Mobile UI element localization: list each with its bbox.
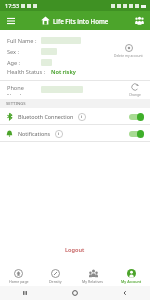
staticText: Delete my account [114, 53, 143, 57]
staticText: SETTINGS [6, 101, 26, 107]
staticText: Phone Number : [7, 84, 39, 95]
staticText: Density [49, 279, 62, 284]
button[interactable]: Change phone number [129, 83, 141, 96]
button[interactable]: Home page [0, 266, 37, 286]
staticText: i [81, 114, 83, 120]
button[interactable]: Menu [4, 14, 17, 27]
button[interactable]: Delete my account [114, 44, 143, 57]
staticText: Not risky [51, 68, 76, 76]
staticText: Health Status : [7, 68, 46, 76]
button[interactable]: Info about Bluetooth Connection [77, 112, 86, 121]
staticText: Age : [7, 59, 21, 67]
staticText: Sex : [7, 48, 20, 56]
staticText: Change [129, 92, 141, 96]
staticText: Full Name : [7, 37, 37, 45]
staticText: i [58, 131, 60, 137]
button[interactable]: Relatives [133, 14, 146, 27]
staticText: Logout [65, 246, 85, 254]
staticText: Home page [9, 279, 29, 284]
staticText: Life Fits into Home [53, 17, 109, 25]
button[interactable]: Bluetooth Connection [0, 108, 150, 124]
button[interactable]: My Account [112, 266, 150, 286]
button[interactable]: Toggle [129, 129, 144, 138]
staticText: My Relatives [82, 279, 104, 284]
staticText: My Account [121, 279, 142, 284]
staticText: Bluetooth Connection [18, 113, 74, 120]
staticText: 17:53 [5, 2, 20, 9]
button[interactable]: Toggle [129, 112, 144, 121]
button[interactable]: Info about Notifications [54, 129, 63, 138]
button[interactable]: My Relatives [74, 266, 112, 286]
button[interactable]: Logout [0, 244, 150, 256]
button[interactable]: Density [37, 266, 74, 286]
staticText: Notifications [18, 130, 51, 137]
button[interactable]: Notifications [0, 125, 150, 141]
